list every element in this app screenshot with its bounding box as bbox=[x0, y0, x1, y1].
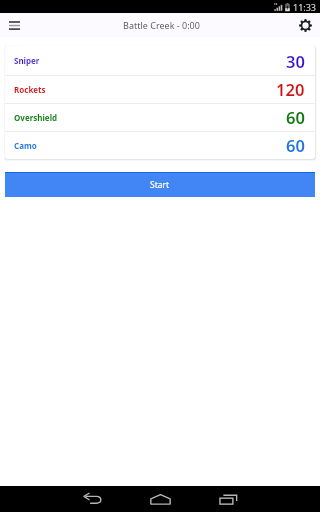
staticText: 30 bbox=[286, 50, 305, 72]
staticText: Sniper bbox=[14, 55, 40, 66]
staticText: 11:33 bbox=[293, 1, 317, 13]
button[interactable]: Camo bbox=[5, 131, 315, 159]
staticText: Camo bbox=[14, 140, 37, 151]
staticText: 60 bbox=[286, 106, 305, 128]
staticText: Rockets bbox=[14, 84, 46, 95]
staticText: Battle Creek - 0:00 bbox=[123, 19, 200, 31]
button[interactable]: Start bbox=[5, 172, 315, 197]
button[interactable]: Rockets bbox=[5, 75, 315, 103]
button[interactable]: Back bbox=[69, 486, 115, 512]
staticText: 60 bbox=[286, 134, 305, 156]
button[interactable]: Menu bbox=[5, 16, 23, 34]
button[interactable]: Recents bbox=[205, 486, 251, 512]
button[interactable]: Settings bbox=[296, 16, 314, 34]
staticText: Start bbox=[150, 179, 170, 191]
button[interactable]: Home bbox=[137, 486, 183, 512]
staticText: Overshield bbox=[14, 112, 58, 123]
staticText: 120 bbox=[276, 78, 305, 100]
button[interactable]: Overshield bbox=[5, 103, 315, 131]
button[interactable]: Sniper bbox=[5, 46, 315, 75]
